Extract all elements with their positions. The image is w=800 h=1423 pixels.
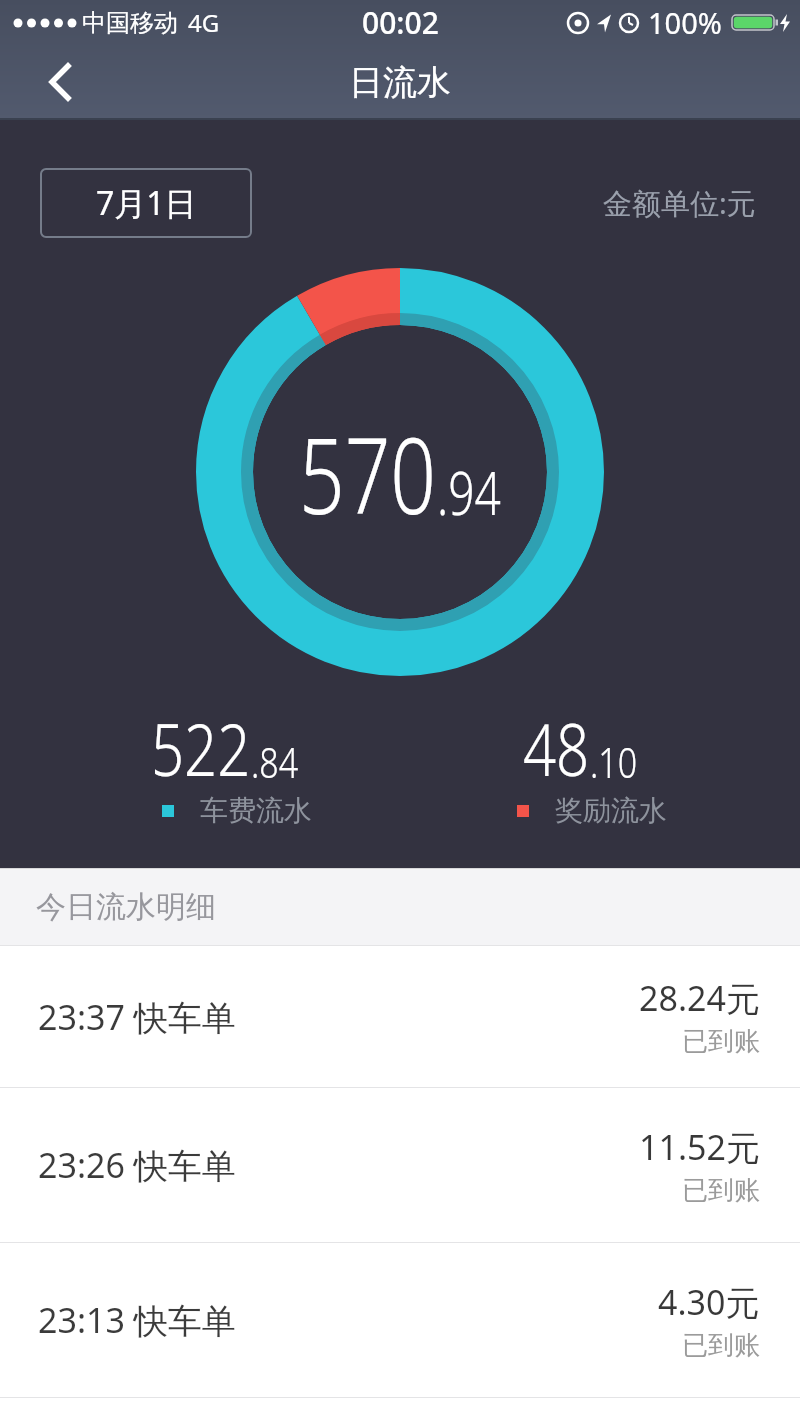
staticText: 奖励流水 xyxy=(555,793,667,828)
staticText: 23:13 快车单 xyxy=(38,1297,236,1343)
staticText: 已到账 xyxy=(682,1174,760,1207)
button[interactable]: 23:26 快车单 xyxy=(0,1088,800,1243)
staticText: 570 xyxy=(299,401,437,544)
staticText: 日流水 xyxy=(349,61,451,104)
button[interactable]: 23:37 快车单 xyxy=(0,946,800,1088)
button[interactable]: 23:13 快车单 xyxy=(0,1243,800,1398)
button[interactable]: 7月1日 xyxy=(40,168,252,238)
staticText: 100% xyxy=(648,3,722,42)
staticText: .84 xyxy=(251,733,299,791)
staticText: 23:26 快车单 xyxy=(38,1142,236,1188)
staticText: 522 xyxy=(151,698,251,797)
staticText: .10 xyxy=(590,733,638,791)
staticText: 00:02 xyxy=(362,2,439,43)
staticText: 28.24元 xyxy=(639,975,760,1021)
staticText: 今日流水明细 xyxy=(36,888,216,926)
staticText: 已到账 xyxy=(682,1025,760,1058)
staticText: 4G xyxy=(188,6,220,39)
staticText: 已到账 xyxy=(682,1329,760,1362)
staticText: 中国移动 xyxy=(82,8,178,38)
staticText: 7月1日 xyxy=(96,181,197,225)
staticText: 车费流水 xyxy=(200,793,312,828)
staticText: 11.52元 xyxy=(639,1124,760,1170)
staticText: .94 xyxy=(437,451,501,534)
staticText: 48 xyxy=(523,698,590,797)
staticText: 23:37 快车单 xyxy=(38,994,236,1040)
button[interactable] xyxy=(32,54,88,110)
staticText: 金额单位:元 xyxy=(603,183,756,223)
staticText: 4.30元 xyxy=(658,1279,760,1325)
